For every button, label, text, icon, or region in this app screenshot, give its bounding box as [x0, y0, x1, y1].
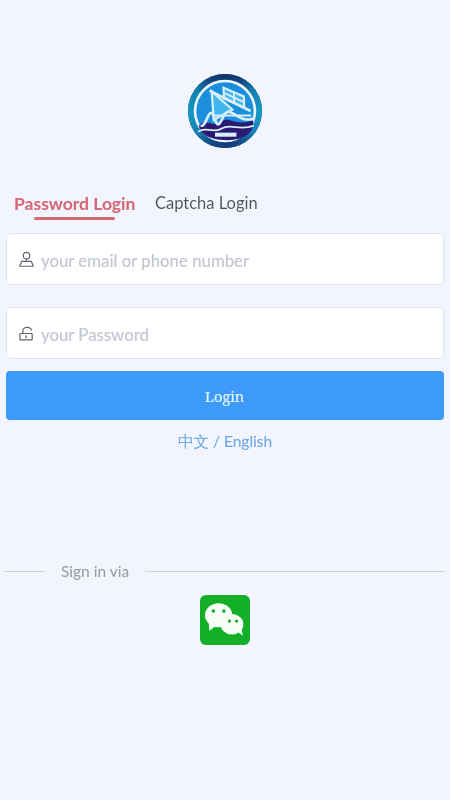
button[interactable]: Sign in with WeChat	[200, 595, 250, 645]
button[interactable]: your Password	[6, 307, 444, 359]
staticText: Sign in via	[61, 562, 130, 581]
button[interactable]: Login	[6, 371, 444, 420]
staticText: 中文 / English	[178, 432, 273, 452]
staticText: your Password	[41, 324, 149, 344]
staticText: Password Login	[14, 193, 136, 214]
staticText: your email or phone number	[41, 250, 250, 270]
button[interactable]: Captcha Login	[155, 193, 258, 213]
button[interactable]: your email or phone number	[6, 233, 444, 285]
staticText: Login	[205, 386, 245, 406]
staticText: Captcha Login	[155, 193, 258, 213]
button[interactable]: Password Login	[14, 193, 136, 220]
button[interactable]: 中文 / English	[174, 430, 277, 454]
